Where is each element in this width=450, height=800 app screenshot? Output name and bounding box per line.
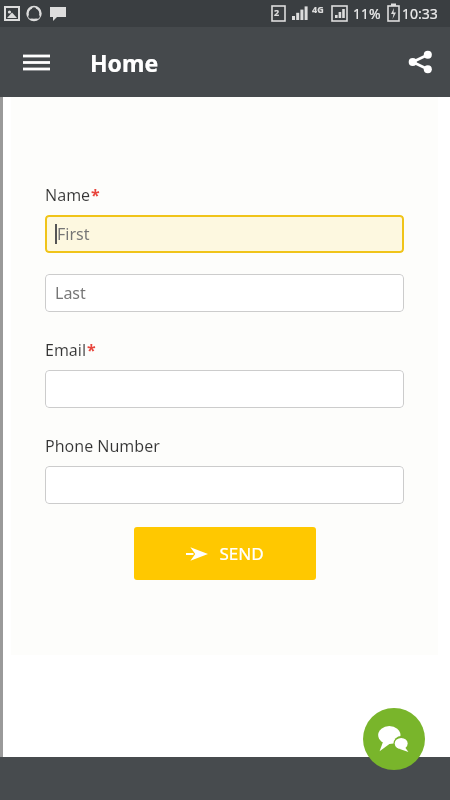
staticText: Home [90,47,159,78]
button[interactable] [45,370,404,408]
staticText: 4G [312,3,324,15]
staticText: Email [45,339,87,361]
staticText: * [91,184,100,206]
staticText: Last [55,282,86,304]
staticText: 2 [274,6,280,18]
staticText: Name [45,184,91,206]
staticText: First [57,223,90,245]
button[interactable]: Open chat [363,708,425,770]
button[interactable]: SEND [134,527,316,580]
staticText: 10:33 [402,4,438,23]
staticText: Phone Number [45,435,160,457]
staticText: 11% [353,4,381,23]
button[interactable]: Share [396,38,444,86]
button[interactable]: First [45,215,404,253]
button[interactable] [45,466,404,504]
button[interactable]: Last [45,274,404,312]
button[interactable]: Open navigation menu [12,38,60,86]
staticText: SEND [219,542,264,565]
staticText: * [87,339,96,361]
